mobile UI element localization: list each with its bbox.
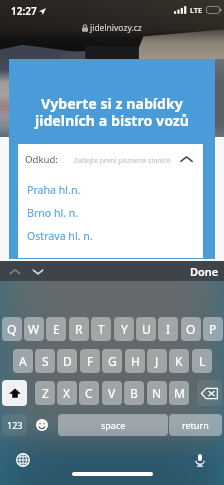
staticText: F [87,353,94,369]
button[interactable]: R [69,317,89,341]
staticText: Ostrava hl. n. [27,229,93,243]
button[interactable]: Z [35,381,55,405]
staticText: L [199,353,206,369]
button[interactable]: Q [2,317,22,341]
staticText: 123 [7,419,23,431]
staticText: Odkud: [25,153,58,166]
button[interactable]: X [57,381,77,405]
button[interactable]: E [46,317,66,341]
button[interactable]: W [24,317,44,341]
staticText: U [142,321,151,337]
staticText: B [130,385,138,401]
button[interactable]: Done [188,261,220,281]
staticText: K [175,353,183,369]
staticText: A [19,353,27,369]
staticText: X [63,385,71,401]
button[interactable]: T [91,317,111,341]
button[interactable]: J [147,349,167,373]
staticText: C [85,385,93,401]
staticText: V [108,385,116,401]
button[interactable]: Dictate [192,452,208,468]
button[interactable]: Brno hl. n. [18,201,203,224]
button[interactable]: V [102,381,122,405]
staticText: I [166,321,171,337]
button[interactable]: Previous field [8,265,22,279]
button[interactable]: return [169,414,222,436]
staticText: T [98,321,105,337]
button[interactable]: space [58,414,168,436]
button[interactable]: O [181,317,201,341]
staticText: jidelnivozy.cz [90,22,142,34]
button[interactable]: S [35,349,55,373]
staticText: S [42,353,49,369]
staticText: D [63,353,72,369]
staticText: J [155,353,159,369]
button[interactable]: G [102,349,122,373]
staticText: Y [121,321,128,337]
staticText: O [186,321,196,337]
button[interactable]: Ostrava hl. n. [18,224,203,247]
button[interactable]: Collapse suggestions [179,152,194,167]
button[interactable]: Y [114,317,134,341]
button[interactable]: Change keyboard [15,452,31,468]
staticText: space [101,419,126,431]
button[interactable]: B [124,381,144,405]
staticText: H [131,353,140,369]
staticText: E [53,321,60,337]
staticText: LTE [190,5,203,15]
button[interactable]: N [147,381,167,405]
button[interactable]: H [125,349,145,373]
staticText: N [152,385,162,401]
staticText: Zadejte první písmena stanice [74,156,171,165]
staticText: M [174,385,185,401]
button[interactable]: D [57,349,77,373]
staticText: Done [190,264,219,279]
staticText: R [75,321,83,337]
button[interactable]: 123 [2,414,27,436]
staticText: Praha hl.n. [27,183,81,197]
button[interactable]: U [136,317,156,341]
button[interactable]: C [79,381,99,405]
button[interactable]: A [13,349,33,373]
button[interactable]: K [169,349,189,373]
staticText: Z [42,385,49,401]
staticText: return [182,419,209,431]
button[interactable]: Backspace [197,380,222,406]
staticText: P [209,321,217,337]
button[interactable]: F [80,349,100,373]
button[interactable]: Next field [31,265,45,279]
button[interactable]: L [192,349,212,373]
staticText: 12:27 [11,4,37,18]
button[interactable]: Praha hl.n. [18,178,203,201]
staticText: Brno hl. n. [27,206,79,220]
staticText: Q [7,321,17,337]
button[interactable]: M [169,381,189,405]
button[interactable]: I [158,317,178,341]
button[interactable]: P [203,317,223,341]
staticText: Vyberte si z nabídky jidelních a bistro … [9,94,215,130]
button[interactable]: Shift [2,380,27,406]
staticText: W [28,321,40,337]
button[interactable]: Emoji [30,414,53,436]
staticText: G [108,353,117,369]
